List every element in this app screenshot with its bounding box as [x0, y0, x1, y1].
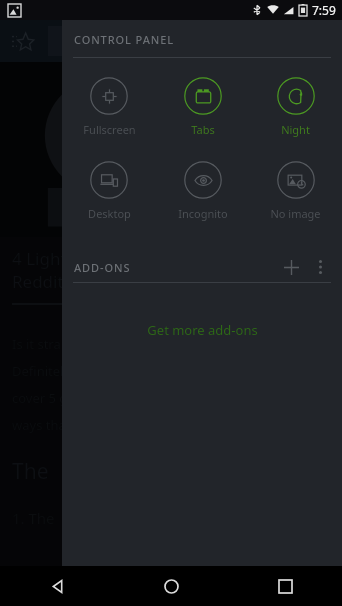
staticText: 7:59: [312, 2, 336, 18]
button[interactable]: Tabs: [156, 68, 249, 146]
button[interactable]: Night: [249, 68, 342, 146]
staticText: Get more add-ons: [147, 321, 258, 339]
staticText: CONTROL PANEL: [74, 32, 175, 47]
button[interactable]: Home: [114, 566, 228, 606]
staticText: Night: [281, 122, 310, 137]
button[interactable]: Desktop: [62, 152, 156, 230]
staticText: Reddit Clients: [12, 270, 122, 293]
button[interactable]: Recents: [228, 566, 342, 606]
staticText: Fullscreen: [83, 122, 136, 137]
staticText: Tabs: [191, 122, 215, 137]
staticText: Definitely not, and we: [12, 362, 146, 380]
staticText: cover 5 great apps in: [12, 389, 140, 407]
button[interactable]: Add add-on: [276, 252, 306, 282]
button[interactable]: Back: [0, 566, 114, 606]
staticText: Incognito: [178, 206, 228, 221]
staticText: 4 Lightning-Fast: [12, 247, 141, 270]
staticText: ADD-ONS: [74, 260, 131, 275]
button[interactable]: Fullscreen: [62, 68, 156, 146]
button[interactable]: No image: [249, 152, 342, 230]
button[interactable]: Get more add-ons: [137, 317, 268, 343]
staticText: The: [12, 457, 49, 486]
button[interactable]: More options: [306, 253, 334, 281]
staticText: ways that matter.: [12, 416, 117, 434]
staticText: No image: [270, 206, 321, 221]
staticText: Desktop: [88, 206, 131, 221]
staticText: Is it strange to say that: [12, 335, 152, 353]
button[interactable]: Incognito: [156, 152, 249, 230]
